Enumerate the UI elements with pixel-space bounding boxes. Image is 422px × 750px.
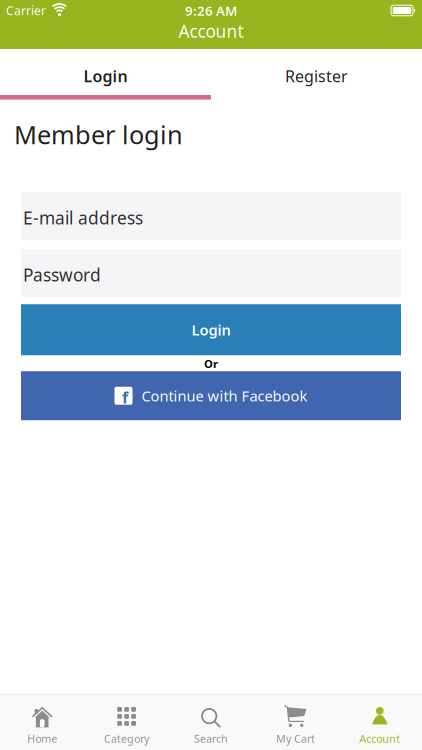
staticText: Search (194, 731, 228, 746)
staticText: Login (83, 65, 127, 87)
staticText: Carrier (6, 2, 46, 18)
staticText: Continue with Facebook (141, 386, 307, 405)
button[interactable]: E-mail address (21, 192, 401, 240)
button[interactable]: Search (169, 695, 253, 750)
button[interactable]: Register (211, 49, 422, 95)
button[interactable]: Password (21, 249, 401, 297)
button[interactable]: f (21, 371, 401, 420)
button[interactable]: My Cart (253, 695, 338, 750)
button[interactable]: Login (21, 304, 401, 355)
staticText: Password (23, 263, 101, 286)
staticText: E-mail address (23, 206, 143, 229)
staticText: 9:26 AM (185, 2, 237, 19)
button[interactable]: Home (0, 695, 84, 750)
staticText: Or (204, 356, 218, 371)
button[interactable]: Account (338, 695, 422, 750)
staticText: f (122, 386, 128, 408)
staticText: Category (104, 731, 149, 746)
staticText: Home (27, 731, 57, 746)
staticText: Account (178, 19, 243, 42)
staticText: Register (285, 65, 348, 87)
button[interactable]: Login (0, 49, 211, 95)
button[interactable]: Category (84, 695, 169, 750)
staticText: Login (191, 320, 230, 340)
staticText: Account (359, 731, 400, 746)
staticText: Member login (14, 118, 183, 151)
staticText: My Cart (276, 731, 315, 746)
